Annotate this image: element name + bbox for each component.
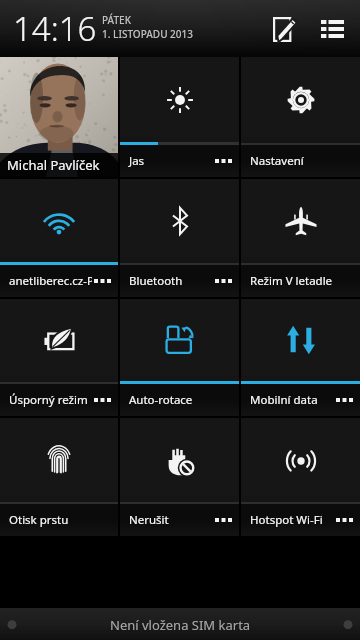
button[interactable]: Auto-rotace [120, 299, 239, 416]
button[interactable]: Režim V letadle [241, 179, 360, 297]
staticText: Auto-rotace [129, 392, 193, 408]
staticText: 1. LISTOPADU 2013 [102, 27, 193, 41]
staticText: Bluetooth [129, 273, 183, 289]
button[interactable]: Michal Pavlíček [0, 57, 118, 177]
button[interactable]: anetliberec.cz-Pa [0, 179, 118, 297]
button[interactable]: Nastavení [241, 57, 360, 177]
staticText: Mobilní data [250, 392, 318, 408]
staticText: Není vložena SIM karta [110, 616, 251, 634]
staticText: Nerušit [129, 512, 169, 528]
button[interactable]: Jas [120, 57, 239, 177]
button[interactable]: Bluetooth [120, 179, 239, 297]
button[interactable]: List [308, 4, 356, 54]
button[interactable]: Úsporný režim [0, 299, 118, 416]
staticText: Nastavení [250, 153, 304, 169]
button[interactable]: Edit [260, 4, 308, 54]
staticText: Jas [129, 153, 145, 169]
staticText: anetliberec.cz-Pa [9, 273, 92, 289]
button[interactable]: Nerušit [120, 418, 239, 536]
button[interactable]: Mobilní data [241, 299, 360, 416]
staticText: Hotspot Wi-Fi [250, 512, 323, 528]
staticText: Michal Pavlíček [7, 156, 100, 174]
staticText: Úsporný režim [9, 392, 88, 408]
staticText: PÁTEK [102, 13, 131, 27]
staticText: 14:16 [13, 6, 97, 51]
button[interactable]: Otisk prstu [0, 418, 118, 536]
staticText: Režim V letadle [250, 273, 333, 289]
button[interactable]: Hotspot Wi-Fi [241, 418, 360, 536]
staticText: Otisk prstu [9, 512, 69, 528]
